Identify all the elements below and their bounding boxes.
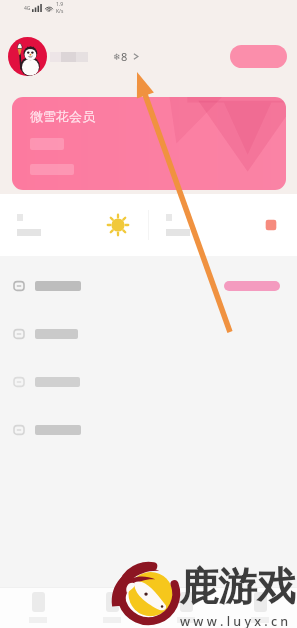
button[interactable] bbox=[0, 406, 297, 454]
staticText: 4G bbox=[24, 5, 31, 12]
button[interactable]: Action bbox=[230, 45, 287, 68]
button[interactable] bbox=[0, 358, 297, 406]
staticText: 1.9 bbox=[56, 1, 64, 8]
staticText: 微雪花会员 bbox=[30, 108, 95, 124]
staticText: 8 bbox=[121, 49, 128, 64]
button[interactable] bbox=[0, 262, 297, 310]
button[interactable]: Tab 2 bbox=[149, 588, 223, 628]
button[interactable]: Avatar bbox=[8, 37, 47, 76]
button[interactable]: Tab 1 bbox=[75, 588, 149, 628]
button[interactable]: Tab 0 bbox=[0, 588, 75, 628]
staticText: w w w . l u y x . c n bbox=[180, 613, 289, 628]
button[interactable] bbox=[0, 194, 148, 256]
staticText: ❄ bbox=[113, 52, 121, 62]
button[interactable]: 微雪花会员 bbox=[12, 97, 286, 190]
staticText: 鹿游戏 bbox=[179, 562, 296, 611]
button[interactable]: Tab 3 bbox=[223, 588, 297, 628]
button[interactable] bbox=[0, 310, 297, 358]
staticText: K/s bbox=[56, 8, 64, 15]
button[interactable] bbox=[149, 194, 297, 256]
button[interactable]: ❄ bbox=[50, 49, 139, 64]
